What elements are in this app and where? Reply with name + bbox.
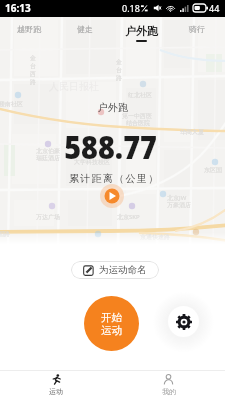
staticText: 东区国: [204, 166, 222, 174]
staticText: 路: [116, 74, 122, 82]
button[interactable]: Settings: [168, 306, 199, 337]
staticText: 台: [116, 66, 122, 74]
button[interactable]: 户外跑: [113, 17, 169, 45]
staticText: 累计距离（公里）: [69, 172, 160, 185]
button[interactable]: 健走: [57, 17, 113, 45]
staticText: 户外跑: [98, 101, 128, 114]
staticText: 户外跑: [125, 24, 158, 38]
staticText: 运动: [49, 387, 63, 396]
staticText: 西: [30, 70, 36, 78]
staticText: 北京伯豪: [36, 147, 60, 155]
staticText: 北京SKP: [117, 213, 140, 221]
staticText: 万豪酒店: [167, 201, 191, 209]
button[interactable]: 开始 运动: [84, 296, 139, 351]
staticText: 16:13: [5, 1, 31, 15]
staticText: 北京JW: [167, 194, 187, 202]
staticText: 44: [209, 2, 220, 14]
staticText: 家楼南社区: [0, 100, 23, 108]
staticText: 骑行: [189, 24, 205, 34]
staticText: 为运动命名: [99, 264, 147, 276]
staticText: 大学科技校区: [74, 158, 110, 166]
staticText: 金: [116, 58, 122, 66]
staticText: 0.18: [122, 2, 140, 14]
staticText: 瑞廷酒店: [36, 154, 60, 162]
button[interactable]: 骑行: [169, 17, 225, 45]
button[interactable]: 为运动命名: [71, 261, 159, 279]
staticText: 第一中西医: [122, 112, 152, 120]
staticText: 我的: [162, 387, 176, 396]
staticText: 健走: [77, 24, 93, 34]
staticText: 红北社区: [128, 91, 152, 99]
staticText: 人民日报社: [49, 80, 99, 93]
staticText: 国路: [0, 230, 10, 238]
staticText: 金: [30, 54, 36, 62]
staticText: 开始 运动: [101, 311, 122, 337]
staticText: 台: [30, 62, 36, 70]
staticText: 万达广场: [36, 213, 60, 221]
staticText: 588.77: [64, 125, 158, 169]
staticText: 结合医院: [126, 119, 150, 127]
staticText: 越野跑: [17, 24, 41, 34]
staticText: 路: [30, 78, 36, 86]
button[interactable]: 运动: [0, 371, 112, 400]
staticText: 京通快速路: [140, 233, 170, 241]
button[interactable]: 越野跑: [0, 17, 57, 45]
button[interactable]: 我的: [112, 371, 225, 400]
staticText: 华商大厦: [180, 128, 204, 136]
